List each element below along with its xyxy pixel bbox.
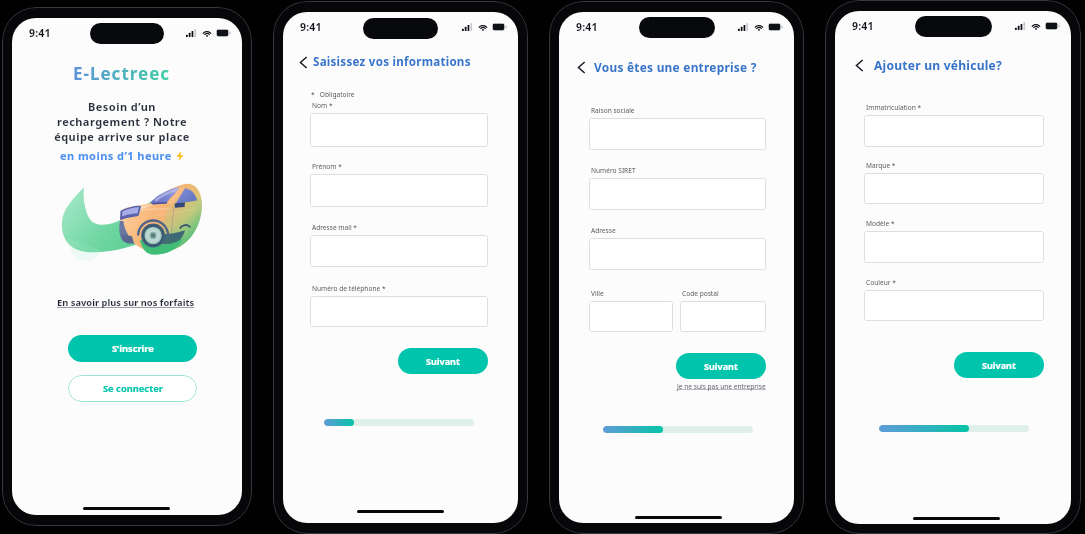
staticText: Adresse mail * (312, 223, 357, 232)
staticText: 9:41 (300, 20, 322, 34)
staticText: Nom * (312, 101, 333, 110)
staticText: Modèle * (866, 219, 895, 228)
button[interactable] (589, 178, 766, 210)
staticText: Prénom * (312, 162, 342, 171)
staticText: Suivant (426, 355, 460, 367)
staticText: 9:41 (576, 20, 598, 34)
staticText: E-Lectreec (73, 62, 171, 85)
staticText: Numéro de téléphone * (312, 284, 386, 293)
staticText: Se connecter (103, 382, 163, 395)
staticText: Ville (591, 289, 604, 298)
button[interactable] (864, 231, 1044, 263)
staticText: Saisissez vos informations (313, 54, 471, 70)
button[interactable]: Se connecter (68, 375, 197, 402)
button[interactable]: Je ne suis pas une entreprise (677, 382, 766, 391)
staticText: En savoir plus sur nos forfaits (57, 296, 195, 309)
button[interactable]: Back (853, 59, 866, 72)
button[interactable] (864, 115, 1044, 147)
button[interactable] (864, 173, 1044, 204)
staticText: Ajouter un véhicule? (874, 57, 1002, 73)
button[interactable]: S’inscrire (68, 335, 197, 362)
staticText: Suivant (704, 360, 738, 372)
button[interactable] (589, 238, 766, 270)
staticText: 9:41 (852, 19, 874, 33)
button[interactable]: Suivant (398, 348, 488, 374)
staticText: en moins d’1 heure (60, 148, 176, 163)
button[interactable]: Back (575, 61, 588, 74)
staticText: Besoin d’un rechargement ? Notre équipe … (54, 99, 190, 144)
button[interactable] (680, 301, 766, 332)
button[interactable] (310, 113, 488, 147)
staticText: Code postal (682, 289, 719, 298)
staticText: Je ne suis pas une entreprise (677, 382, 766, 391)
staticText: 9:41 (29, 26, 51, 40)
staticText: Adresse (591, 226, 616, 235)
button[interactable] (589, 301, 673, 332)
button[interactable]: Suivant (676, 353, 766, 379)
staticText: Suivant (982, 359, 1016, 371)
button[interactable] (589, 118, 766, 150)
staticText: Numéro SIRET (591, 166, 636, 175)
staticText: Couleur * (866, 278, 896, 287)
button[interactable]: En savoir plus sur nos forfaits (57, 296, 195, 309)
button[interactable] (310, 296, 488, 327)
button[interactable]: Suivant (954, 352, 1044, 378)
button[interactable] (310, 235, 488, 267)
staticText: S’inscrire (112, 342, 154, 355)
staticText: Immatriculation * (866, 103, 922, 112)
staticText: Marque * (866, 161, 896, 170)
button[interactable]: Back (297, 56, 310, 69)
staticText: Vous êtes une entreprise ? (594, 59, 757, 75)
button[interactable] (310, 174, 488, 207)
button[interactable] (864, 290, 1044, 321)
staticText: * Obligatoire (311, 90, 355, 99)
staticText: Raison sociale (591, 106, 635, 115)
